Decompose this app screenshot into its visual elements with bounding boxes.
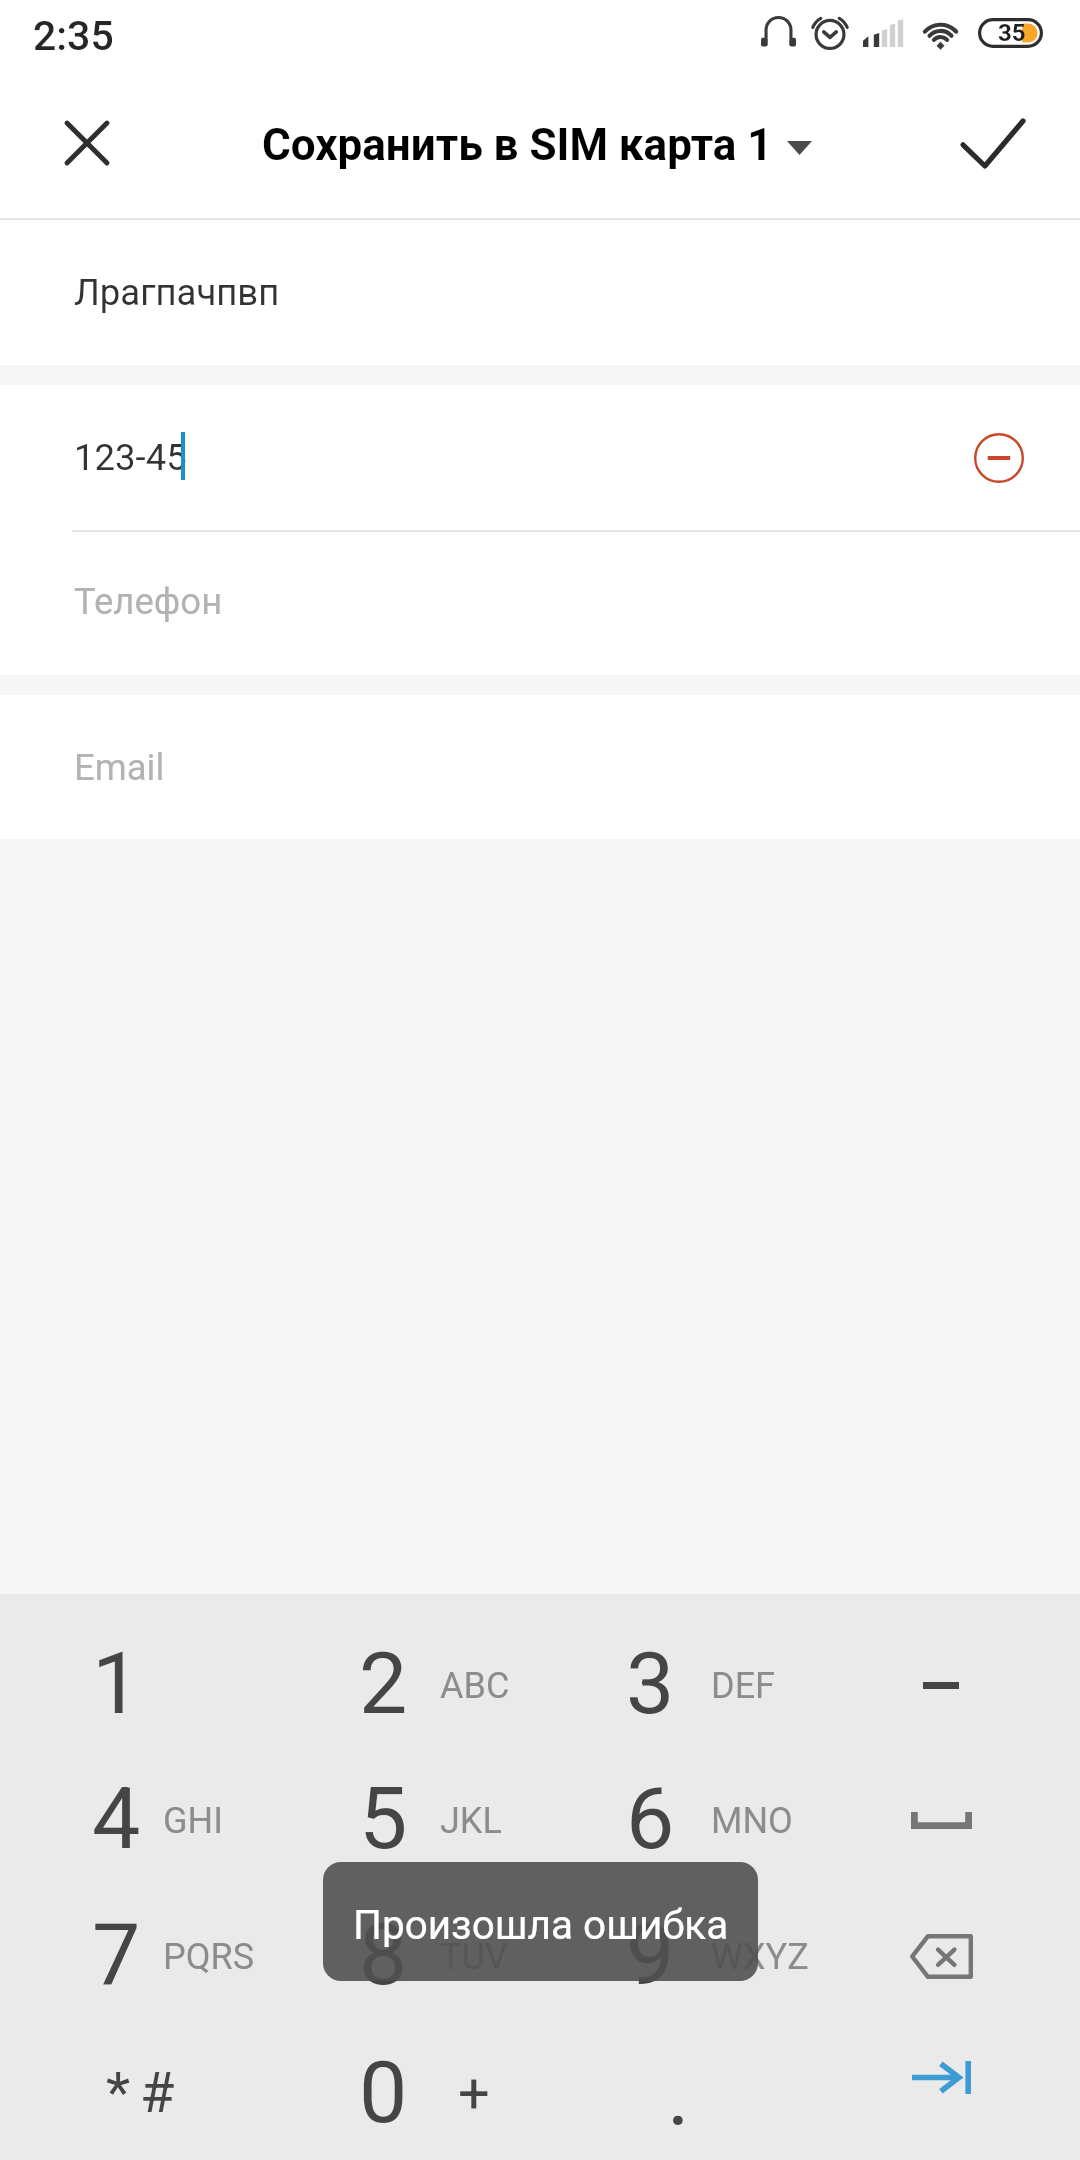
button[interactable]: Save <box>937 93 1047 203</box>
staticText: JKL <box>440 1800 502 1842</box>
staticText: MNO <box>711 1800 793 1842</box>
staticText: 6 <box>626 1768 675 1869</box>
staticText: WXYZ <box>711 1936 809 1978</box>
button[interactable]: Minus <box>810 1617 1080 1753</box>
button[interactable]: 5 <box>270 1752 540 1888</box>
button[interactable]: Next field <box>810 2026 1080 2160</box>
staticText: Лрагпачпвп <box>74 271 280 314</box>
button[interactable]: Space <box>810 1752 1080 1888</box>
button[interactable]: Close <box>32 93 142 203</box>
staticText: 7 <box>92 1904 141 2005</box>
button[interactable]: Backspace <box>810 1888 1080 2024</box>
staticText: 2:35 <box>33 12 114 60</box>
button[interactable]: 6 <box>540 1752 810 1888</box>
button[interactable]: . <box>540 2026 810 2160</box>
button[interactable]: 7 <box>0 1888 270 2024</box>
staticText: 0 <box>359 2042 408 2143</box>
staticText: Сохранить в SIM карта 1 <box>262 119 773 171</box>
staticText: * <box>106 2060 131 2126</box>
staticText: Телефон <box>74 580 223 623</box>
button[interactable]: 8 <box>270 1888 540 2024</box>
staticText: 8 <box>359 1904 408 2005</box>
staticText: 4 <box>92 1768 141 1869</box>
staticText: 2 <box>359 1633 408 1734</box>
staticText: Email <box>74 746 165 789</box>
button[interactable]: 0 <box>270 2026 540 2160</box>
staticText: ABC <box>440 1665 510 1707</box>
staticText: 123-45 <box>74 436 187 479</box>
button[interactable]: 1 <box>0 1617 270 1753</box>
staticText: # <box>140 2060 175 2126</box>
staticText: TUV <box>440 1936 508 1978</box>
staticText: 3 <box>626 1633 675 1734</box>
button[interactable]: 4 <box>0 1752 270 1888</box>
button[interactable]: 3 <box>540 1617 810 1753</box>
staticText: PQRS <box>163 1936 255 1978</box>
staticText: DEF <box>711 1665 775 1707</box>
staticText: GHI <box>163 1800 223 1842</box>
staticText: Произошла ошибка <box>353 1901 729 1948</box>
staticText: . <box>667 2045 690 2146</box>
button[interactable]: Remove phone number <box>960 419 1038 497</box>
button[interactable]: * <box>0 2026 270 2160</box>
button[interactable]: 9 <box>540 1888 810 2024</box>
staticText: 35 <box>998 19 1026 47</box>
staticText: 9 <box>626 1904 675 2005</box>
staticText: + <box>458 2061 490 2127</box>
staticText: 5 <box>359 1768 408 1869</box>
staticText: 1 <box>92 1633 141 1734</box>
button[interactable]: Сохранить в SIM карта 1 <box>262 122 812 174</box>
button[interactable]: 2 <box>270 1617 540 1753</box>
